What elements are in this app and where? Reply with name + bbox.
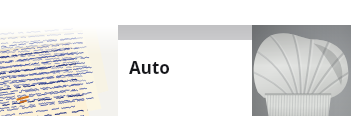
button[interactable]: Auto xyxy=(129,56,170,79)
